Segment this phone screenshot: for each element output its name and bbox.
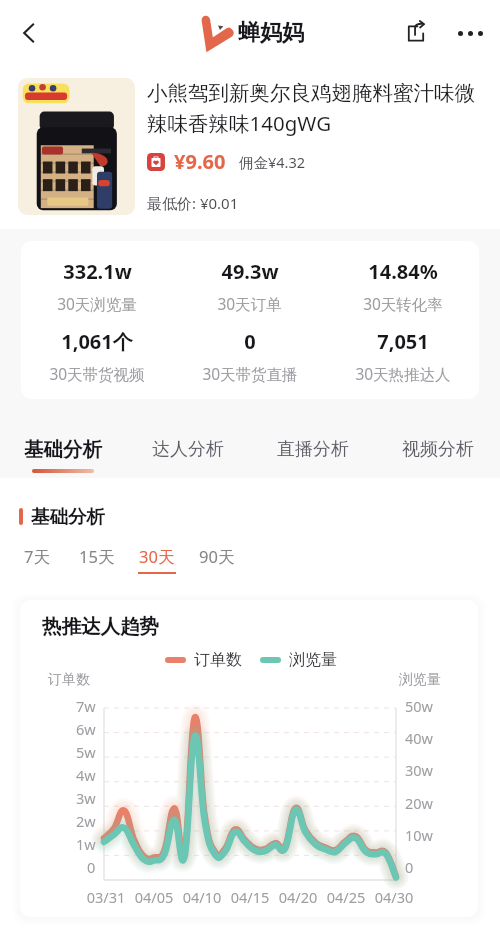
button[interactable]: More options — [448, 11, 492, 55]
button[interactable]: 达人分析 — [125, 422, 250, 478]
staticText: 7w — [76, 696, 96, 716]
staticText: 3w — [76, 788, 96, 808]
staticText: 0 — [244, 328, 256, 355]
staticText: 30天 — [139, 545, 175, 568]
staticText: 浏览量 — [399, 671, 441, 689]
staticText: 04/30 — [370, 887, 418, 907]
staticText: 基础分析 — [31, 505, 105, 528]
button[interactable]: 蝉妈妈 — [196, 14, 304, 52]
button[interactable]: 14.84% — [326, 258, 479, 314]
staticText: 订单数 — [194, 650, 242, 670]
staticText: 49.3w — [221, 258, 279, 285]
staticText: 蝉妈妈 — [238, 19, 304, 47]
staticText: 30天订单 — [217, 293, 282, 314]
staticText: 10w — [405, 825, 433, 845]
button[interactable]: 视频分析 — [375, 422, 500, 478]
button[interactable]: 0 — [173, 328, 326, 384]
staticText: 2w — [76, 811, 96, 831]
staticText: ¥9.60 — [174, 148, 226, 175]
button[interactable]: 小熊驾到新奥尔良鸡翅腌料蜜汁味微辣味香辣味140gWG — [0, 66, 500, 229]
button[interactable]: 7,051 — [326, 328, 479, 384]
button[interactable]: 1,061个 — [21, 328, 173, 384]
staticText: 最低价: ¥0.01 — [147, 193, 239, 213]
button[interactable]: 基础分析 — [0, 422, 125, 478]
staticText: 直播分析 — [277, 438, 349, 461]
staticText: 30天转化率 — [363, 293, 443, 314]
staticText: 40w — [405, 728, 433, 748]
button[interactable]: 30天 — [138, 545, 176, 574]
staticText: 90天 — [199, 545, 235, 568]
staticText: 30天带货直播 — [202, 363, 298, 384]
staticText: 7,051 — [377, 328, 429, 355]
staticText: 基础分析 — [24, 437, 102, 462]
staticText: 50w — [405, 696, 433, 716]
staticText: 04/05 — [130, 887, 178, 907]
staticText: 5w — [76, 742, 96, 762]
staticText: 15天 — [79, 545, 115, 568]
staticText: 30天浏览量 — [57, 293, 137, 314]
staticText: 14.84% — [368, 258, 438, 285]
staticText: 4w — [76, 765, 96, 785]
staticText: 热推达人趋势 — [42, 614, 159, 639]
button[interactable]: 332.1w — [21, 258, 173, 314]
staticText: 04/10 — [178, 887, 226, 907]
staticText: 03/31 — [82, 887, 130, 907]
staticText: 1,061个 — [61, 328, 133, 355]
staticText: 04/15 — [226, 887, 274, 907]
staticText: 20w — [405, 793, 433, 813]
staticText: 30天热推达人 — [355, 363, 451, 384]
staticText: 6w — [76, 719, 96, 739]
staticText: 小熊驾到新奥尔良鸡翅腌料蜜汁味微辣味香辣味140gWG — [147, 80, 484, 137]
staticText: 7天 — [24, 545, 50, 568]
staticText: 视频分析 — [402, 438, 474, 461]
staticText: 30天带货视频 — [49, 363, 145, 384]
button[interactable]: 15天 — [78, 545, 116, 574]
staticText: 0 — [405, 857, 414, 877]
staticText: 达人分析 — [152, 438, 224, 461]
button[interactable]: 90天 — [198, 545, 236, 574]
staticText: 浏览量 — [289, 650, 337, 670]
staticText: 订单数 — [48, 671, 90, 689]
button[interactable]: 直播分析 — [250, 422, 375, 478]
staticText: 04/25 — [322, 887, 370, 907]
staticText: 1w — [76, 834, 96, 854]
staticText: 0 — [87, 857, 96, 877]
button[interactable]: 7天 — [18, 545, 56, 574]
staticText: 30w — [405, 760, 433, 780]
staticText: 332.1w — [63, 258, 132, 285]
button[interactable]: Back — [6, 10, 52, 56]
button[interactable]: 49.3w — [173, 258, 326, 314]
staticText: 04/20 — [274, 887, 322, 907]
staticText: 佣金¥4.32 — [239, 152, 306, 172]
button[interactable]: Share — [394, 11, 438, 55]
